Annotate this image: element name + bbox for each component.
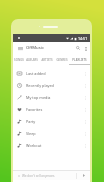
staticText: ALBUMS — [26, 58, 38, 62]
button[interactable]: More options for Workout — [82, 142, 89, 149]
staticText: 14:51 — [78, 36, 88, 41]
staticText: Recently played — [26, 83, 54, 88]
button[interactable]: PLAYLISTS — [69, 54, 90, 65]
button[interactable]: Favorites — [13, 103, 90, 115]
button[interactable]: Sleep — [13, 127, 90, 139]
button[interactable]: We don't sell anymore. — [13, 171, 90, 180]
button[interactable]: My top media — [13, 91, 90, 103]
staticText: PLAYLISTS — [72, 58, 87, 62]
staticText: GENRES — [56, 58, 68, 62]
button[interactable]: Last added — [13, 67, 90, 79]
button[interactable]: Search — [74, 44, 82, 52]
button[interactable]: Party — [13, 115, 90, 127]
button[interactable]: More options for Last added — [82, 70, 89, 77]
button[interactable]: ALBUMS — [25, 54, 39, 65]
button[interactable]: More options for Favorites — [82, 106, 89, 113]
button[interactable]: Open navigation drawer — [16, 44, 24, 52]
button[interactable]: SONGS — [13, 54, 25, 65]
button[interactable]: GENRES — [55, 54, 69, 65]
button[interactable]: More options for Recently played — [82, 82, 89, 89]
staticText: Favorites — [26, 107, 43, 112]
staticText: My top media — [26, 95, 51, 100]
staticText: Last added — [26, 71, 46, 76]
button[interactable]: Play — [77, 171, 90, 180]
staticText: OffMusic — [26, 45, 44, 51]
button[interactable]: More options for My top media — [82, 94, 89, 101]
button[interactable]: Workout — [13, 139, 90, 151]
staticText: ARTISTS — [41, 58, 53, 62]
staticText: SONGS — [14, 58, 24, 62]
staticText: We don't sell anymore. — [22, 174, 56, 178]
button[interactable]: ARTISTS — [39, 54, 55, 65]
button[interactable]: Recently played — [13, 79, 90, 91]
button[interactable]: More options — [82, 45, 89, 52]
button[interactable]: More options for Sleep — [82, 130, 89, 137]
staticText: Sleep — [26, 131, 36, 136]
staticText: Party — [26, 119, 36, 124]
button[interactable]: More options for Party — [82, 118, 89, 125]
staticText: Workout — [26, 143, 42, 148]
